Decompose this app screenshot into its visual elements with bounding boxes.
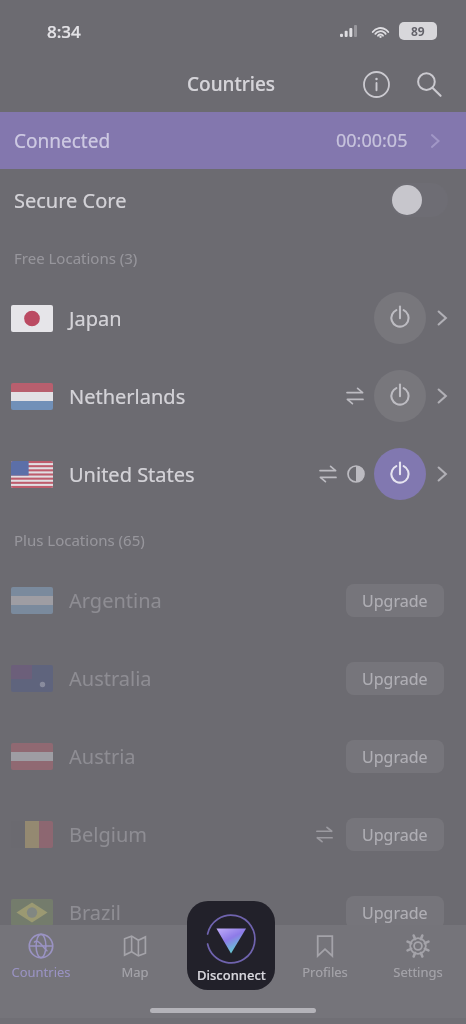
- button[interactable]: Secure Core: [0, 169, 466, 231]
- staticText: Upgrade: [362, 824, 428, 846]
- staticText: Upgrade: [362, 902, 428, 924]
- staticText: Countries: [11, 963, 71, 981]
- staticText: Map: [121, 963, 149, 981]
- staticText: Countries: [187, 71, 276, 97]
- staticText: United States: [69, 461, 195, 488]
- button[interactable]: Upgrade: [346, 662, 444, 695]
- staticText: 89: [411, 23, 425, 39]
- staticText: Free Locations (3): [14, 248, 138, 268]
- button[interactable]: United States: [0, 435, 466, 513]
- button[interactable]: Search: [402, 58, 454, 110]
- staticText: Profiles: [302, 963, 348, 981]
- staticText: Upgrade: [362, 746, 428, 768]
- button[interactable]: Brazil: [0, 873, 466, 951]
- staticText: Upgrade: [362, 668, 428, 690]
- button[interactable]: Map: [89, 925, 181, 995]
- button[interactable]: Information: [350, 58, 402, 110]
- button[interactable]: Connect to Netherlands: [374, 370, 426, 422]
- staticText: Secure Core: [14, 187, 127, 214]
- button[interactable]: Australia: [0, 639, 466, 717]
- staticText: Japan: [69, 305, 122, 332]
- staticText: Plus Locations (65): [14, 530, 145, 550]
- button[interactable]: Japan: [0, 279, 466, 357]
- staticText: 8:34: [47, 20, 81, 43]
- button[interactable]: Disconnect: [187, 901, 275, 990]
- staticText: 00:00:05: [336, 128, 408, 153]
- staticText: Disconnect: [197, 966, 266, 984]
- staticText: Argentina: [69, 587, 162, 614]
- staticText: Austria: [69, 743, 136, 770]
- staticText: Settings: [393, 963, 443, 981]
- button[interactable]: Argentina: [0, 561, 466, 639]
- staticText: Netherlands: [69, 383, 186, 410]
- button[interactable]: Austria: [0, 717, 466, 795]
- button[interactable]: Upgrade: [346, 818, 444, 851]
- button[interactable]: Upgrade: [346, 740, 444, 773]
- staticText: Connected: [14, 128, 111, 154]
- staticText: Belgium: [69, 821, 147, 848]
- button[interactable]: Upgrade: [346, 584, 444, 617]
- button[interactable]: Settings: [372, 925, 464, 995]
- button[interactable]: Profiles: [279, 925, 371, 995]
- button[interactable]: Connect to Japan: [374, 292, 426, 344]
- button[interactable]: Connected: [0, 112, 466, 169]
- staticText: Australia: [69, 665, 152, 692]
- button[interactable]: Countries: [0, 925, 87, 995]
- button[interactable]: Netherlands: [0, 357, 466, 435]
- button[interactable]: Belgium: [0, 795, 466, 873]
- staticText: Brazil: [69, 899, 121, 926]
- staticText: Upgrade: [362, 590, 428, 612]
- button[interactable]: Connect to United States: [374, 448, 426, 500]
- button[interactable]: Upgrade: [346, 896, 444, 929]
